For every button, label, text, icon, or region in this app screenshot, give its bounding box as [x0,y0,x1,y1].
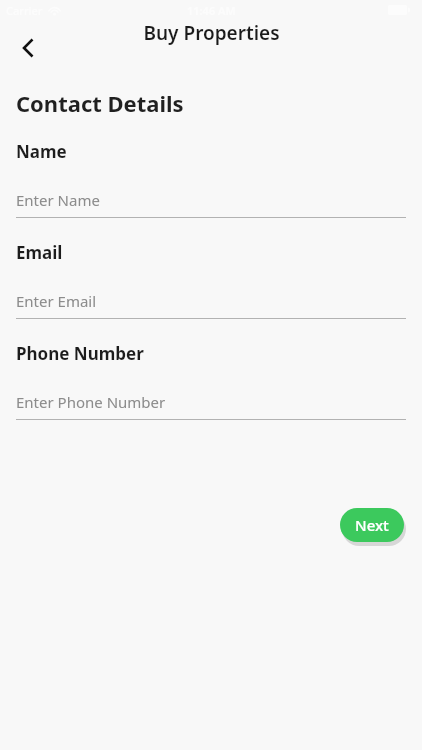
button[interactable]: Next [340,508,404,542]
staticText: Enter Phone Number [16,392,166,412]
staticText: Buy Properties [143,20,280,46]
button[interactable]: Enter Name [0,183,422,217]
staticText: Phone Number [16,342,144,365]
staticText: Email [16,241,63,264]
button[interactable]: Enter Email [0,284,422,318]
staticText: Name [16,140,67,163]
button[interactable]: Enter Phone Number [0,385,422,419]
staticText: Enter Email [16,291,97,311]
button[interactable]: Back [6,26,50,70]
staticText: Next [355,515,389,535]
staticText: Enter Name [16,190,100,210]
staticText: Contact Details [16,88,184,118]
